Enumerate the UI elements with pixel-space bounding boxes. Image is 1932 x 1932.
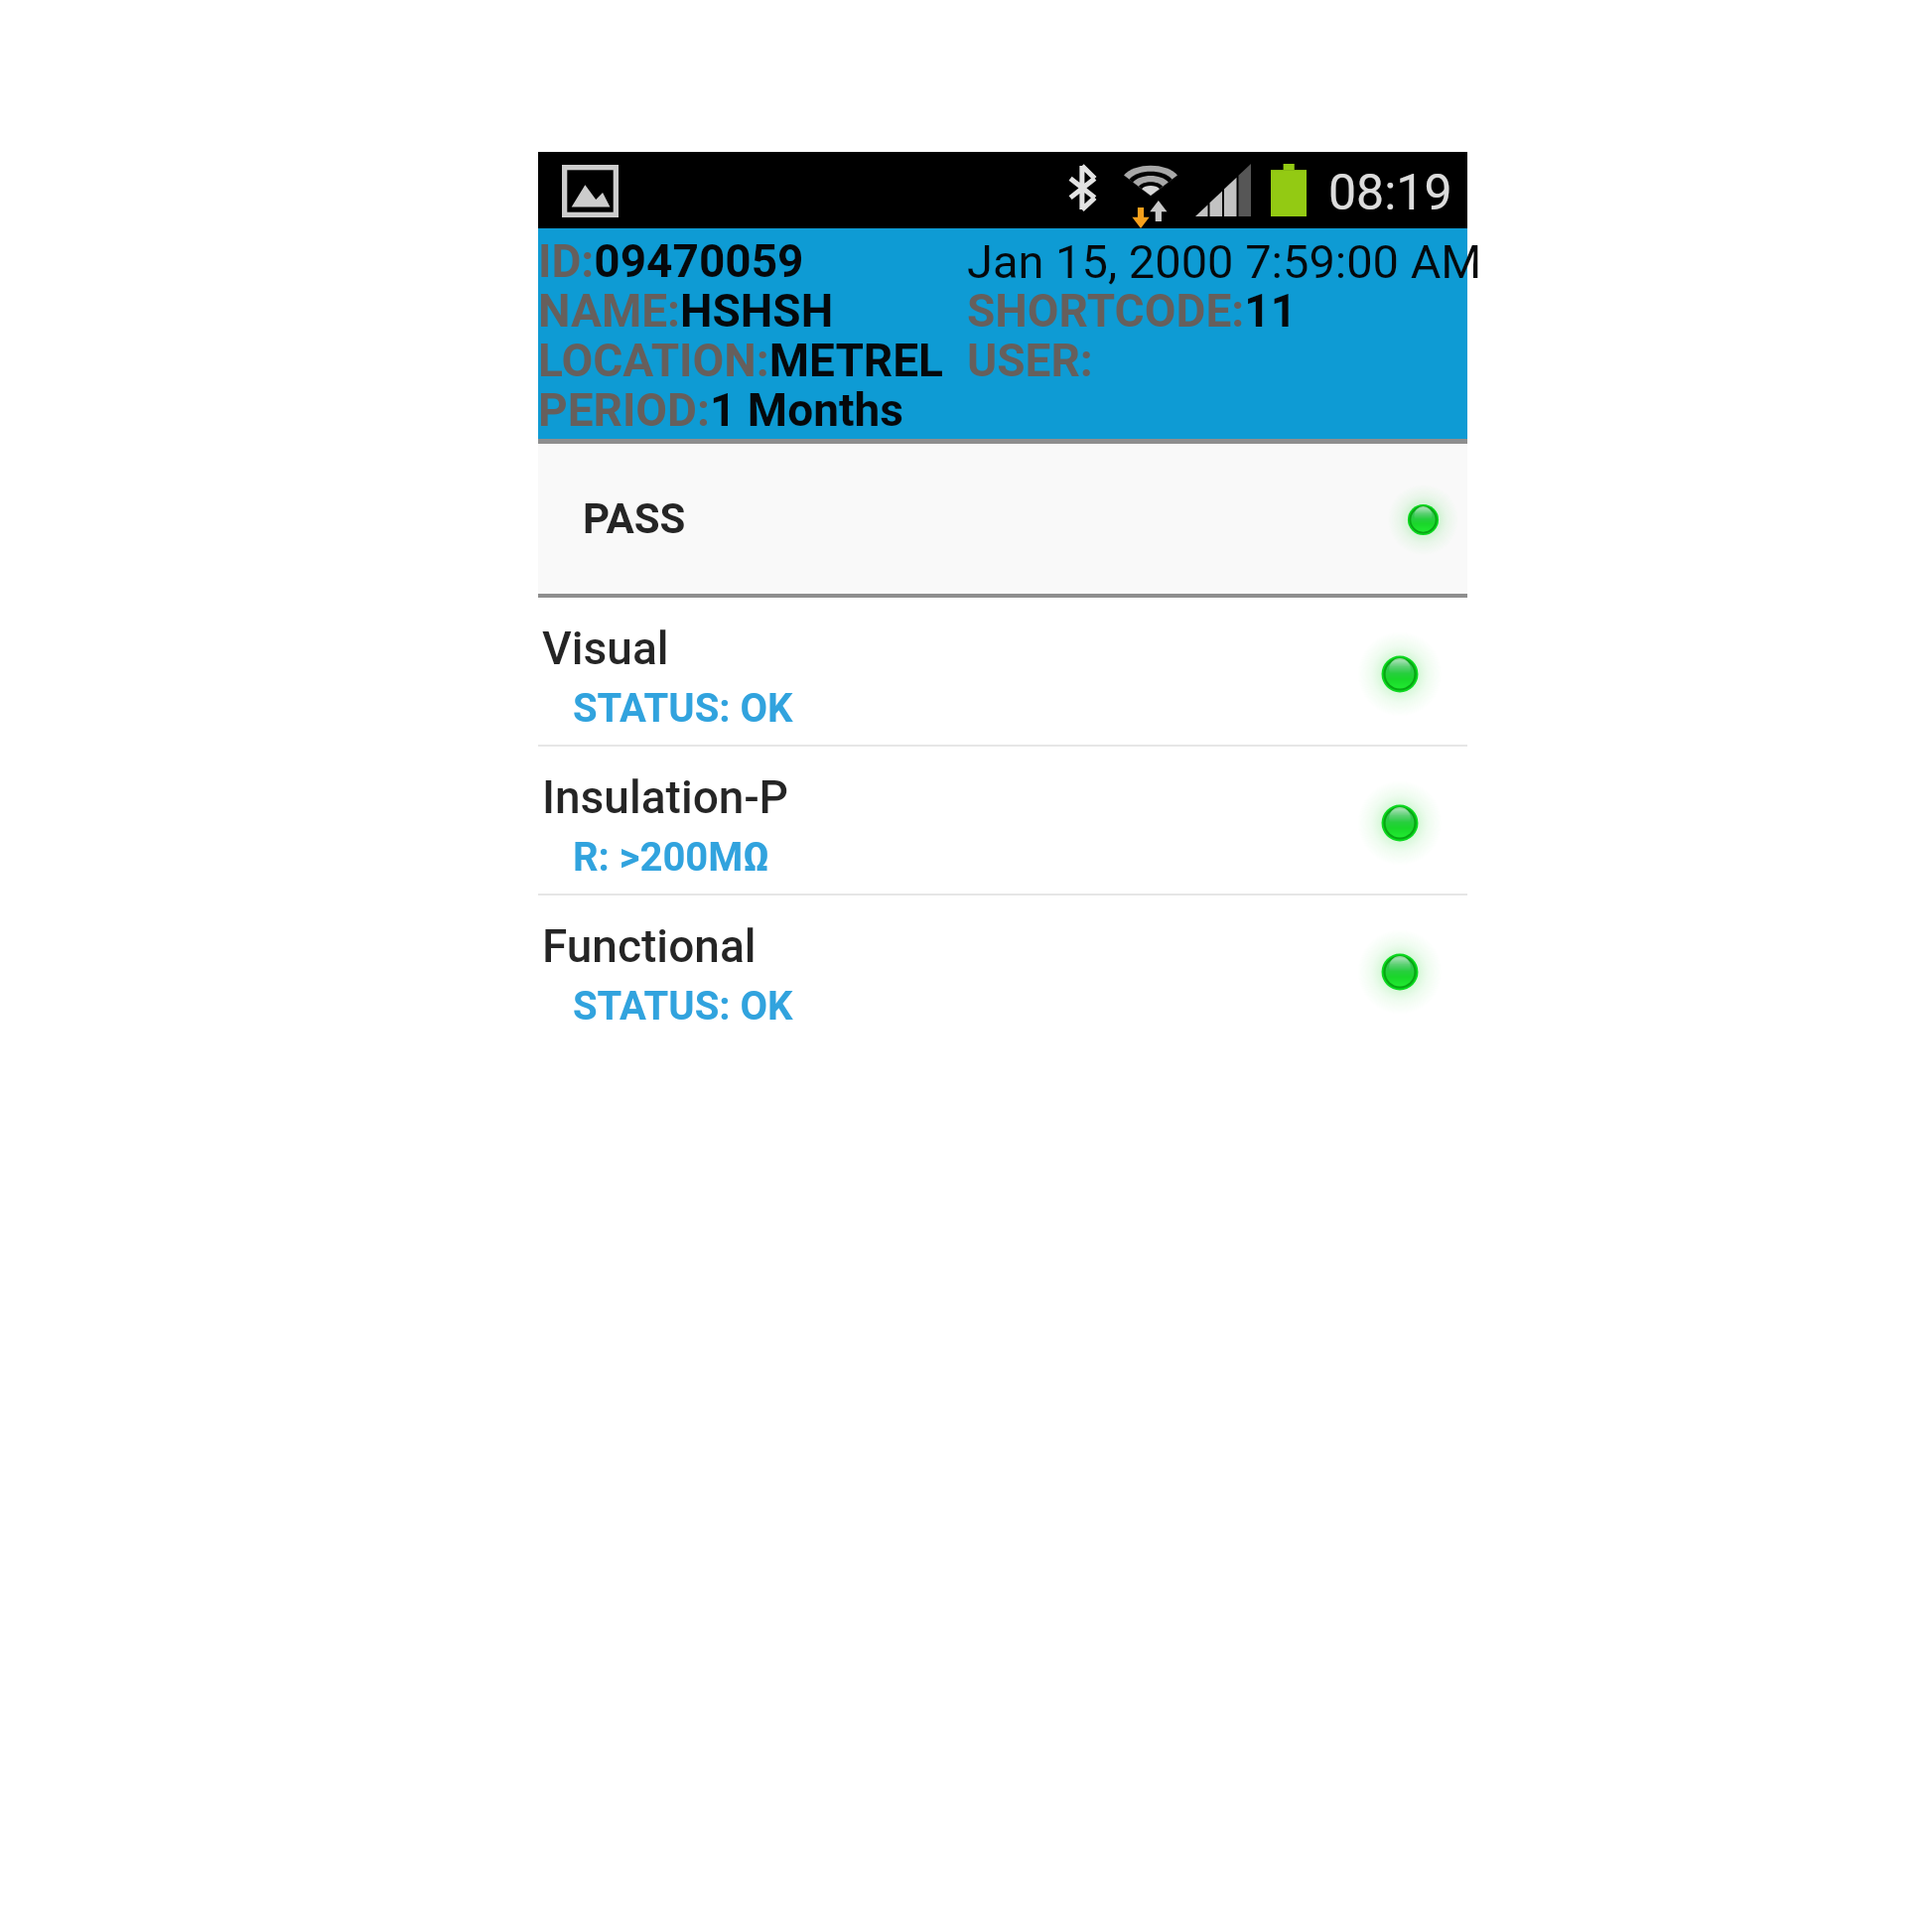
- staticText: PASS: [583, 494, 686, 543]
- staticText: USER:: [967, 334, 1093, 387]
- other: Screenshot captured: [562, 165, 619, 217]
- staticText: STATUS: OK: [573, 685, 793, 732]
- staticText: NAME:HSHSH: [538, 284, 834, 338]
- staticText: PERIOD:1 Months: [538, 383, 903, 437]
- other: Overall result indicator: pass: [1383, 480, 1463, 560]
- other: Result indicator: OK: [1352, 626, 1448, 722]
- other: Result indicator: OK: [1352, 775, 1448, 871]
- staticText: SHORTCODE:11: [967, 284, 1298, 338]
- button[interactable]: Functional, STATUS: OK: [538, 896, 1467, 1042]
- button[interactable]: Insulation-P, R: >200MΩ: [538, 747, 1467, 894]
- staticText: Visual: [542, 621, 669, 675]
- staticText: ID:09470059: [538, 234, 804, 288]
- other: Result indicator: OK: [1352, 924, 1448, 1020]
- staticText: Jan 15, 2000 7:59:00 AM: [967, 234, 1482, 289]
- staticText: Functional: [542, 919, 757, 973]
- staticText: LOCATION:METREL: [538, 334, 943, 387]
- staticText: 08:19: [1328, 164, 1452, 222]
- staticText: STATUS: OK: [573, 983, 793, 1030]
- staticText: Insulation-P: [542, 770, 788, 824]
- staticText: R: >200MΩ: [573, 834, 770, 881]
- button[interactable]: PASS: [538, 444, 1467, 594]
- button[interactable]: Visual, STATUS: OK: [538, 598, 1467, 745]
